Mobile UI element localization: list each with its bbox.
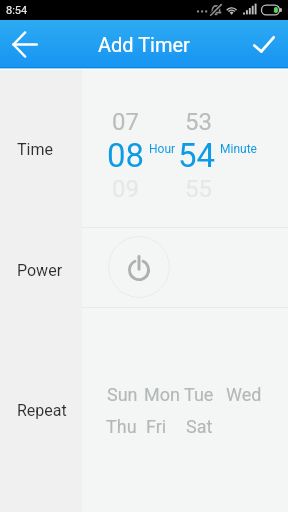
staticText: Sun (107, 384, 138, 405)
button[interactable]: Sun (107, 384, 138, 405)
staticText: Time (17, 140, 53, 159)
button[interactable]: Tue (184, 384, 214, 405)
button[interactable]: Power (108, 236, 170, 298)
staticText: 55 (185, 175, 212, 203)
button[interactable]: Mon (144, 384, 180, 405)
staticText: Minute (220, 142, 257, 156)
staticText: Sat (186, 416, 213, 437)
button[interactable]: Sat (186, 416, 213, 437)
button[interactable]: 08 (107, 136, 145, 175)
staticText: Fri (146, 416, 167, 437)
button[interactable]: Fri (146, 416, 167, 437)
staticText: 08 (107, 136, 145, 175)
staticText: Power (17, 261, 63, 280)
staticText: Add Timer (98, 33, 190, 56)
staticText: Mon (144, 384, 180, 405)
button[interactable]: Thu (106, 416, 137, 437)
staticText: Thu (106, 416, 137, 437)
staticText: Hour (149, 142, 176, 156)
staticText: 07 (112, 108, 139, 136)
staticText: 8:54 (6, 4, 28, 17)
staticText: 09 (112, 175, 139, 203)
button[interactable]: Done (240, 20, 288, 68)
button[interactable]: 54 (178, 136, 216, 175)
staticText: Wed (226, 384, 262, 405)
button[interactable]: Wed (226, 384, 262, 405)
button[interactable]: Back (0, 20, 50, 68)
staticText: 54 (178, 136, 216, 175)
staticText: Repeat (17, 401, 67, 420)
staticText: 53 (185, 108, 212, 136)
staticText: Tue (184, 384, 214, 405)
